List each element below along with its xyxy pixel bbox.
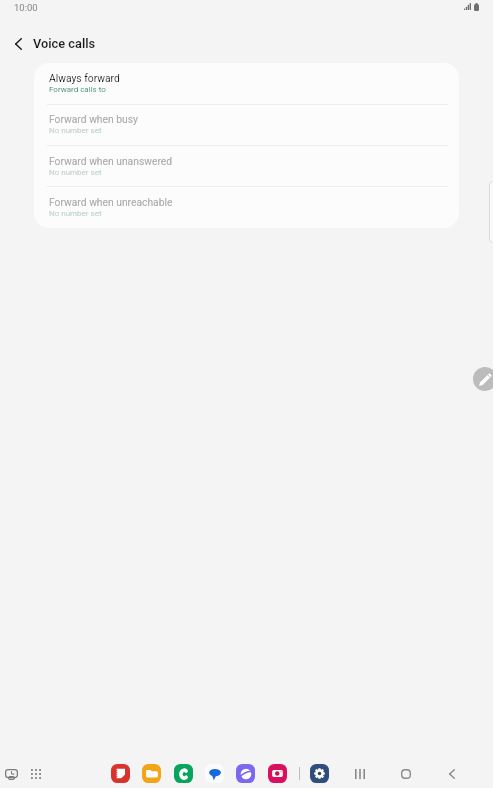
button[interactable]: Phone (174, 764, 193, 783)
button[interactable]: Samsung Notes (111, 764, 130, 783)
staticText: Forward when unreachable (49, 196, 173, 208)
button[interactable]: Recents (347, 762, 373, 786)
button[interactable]: Always forward (34, 63, 459, 104)
button[interactable]: Forward when unreachable (34, 187, 459, 228)
button[interactable]: Home (393, 762, 419, 786)
button[interactable]: Camera (268, 764, 287, 783)
button[interactable]: All apps (24, 762, 48, 786)
staticText: Forward when busy (49, 113, 138, 125)
staticText: No number set (49, 168, 102, 177)
button[interactable]: Messages (205, 764, 224, 783)
button[interactable]: Edit (473, 367, 493, 391)
button[interactable]: Recent apps (0, 762, 23, 786)
button[interactable]: Voice calls (33, 36, 96, 51)
staticText: Forward when unanswered (49, 155, 173, 167)
button[interactable]: Edge panel handle (489, 181, 493, 243)
staticText: Always forward (49, 72, 120, 84)
button[interactable]: Back (439, 762, 465, 786)
button[interactable]: Settings (310, 764, 329, 783)
staticText: No number set (49, 126, 102, 135)
staticText: 10:00 (14, 2, 38, 13)
button[interactable]: Forward when busy (34, 104, 459, 145)
button[interactable]: Forward when unanswered (34, 146, 459, 187)
staticText: Forward calls to (49, 85, 106, 94)
button[interactable]: My Files (142, 764, 161, 783)
button[interactable]: Navigate up (4, 29, 33, 58)
staticText: No number set (49, 209, 102, 218)
staticText: Voice calls (33, 36, 96, 51)
button[interactable]: Internet (236, 764, 255, 783)
